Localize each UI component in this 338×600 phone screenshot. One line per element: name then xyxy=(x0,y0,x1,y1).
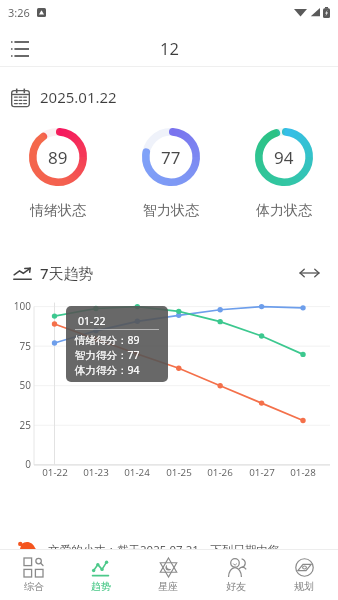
staticText: 情绪得分：89 xyxy=(75,333,140,347)
staticText: 01-24 xyxy=(117,466,157,479)
staticText: 01-27 xyxy=(242,466,282,479)
staticText: 趋势 xyxy=(91,580,111,593)
staticText: 89 xyxy=(48,146,68,169)
staticText: 12 xyxy=(160,37,179,59)
staticText: 体力得分：94 xyxy=(75,363,140,377)
staticText: 75 xyxy=(0,339,31,353)
staticText: 智力状态 xyxy=(143,202,199,220)
staticText: 01-25 xyxy=(159,466,199,479)
staticText: 01-28 xyxy=(283,466,323,479)
staticText: 体力状态 xyxy=(256,202,312,220)
staticText: 情绪状态 xyxy=(30,202,86,220)
staticText: 文爱的小丈：截于2025.07.21，下列日期中您 xyxy=(48,542,280,549)
staticText: 综合 xyxy=(24,580,44,593)
button[interactable]: 89 xyxy=(2,128,114,220)
staticText: 25 xyxy=(0,418,31,432)
staticText: 智力得分：77 xyxy=(75,348,140,362)
button[interactable]: 77 xyxy=(114,128,227,220)
staticText: 77 xyxy=(161,146,181,169)
button[interactable]: 2025.01.22 xyxy=(11,87,117,107)
staticText: 7天趋势 xyxy=(40,263,94,283)
button[interactable]: 趋势 xyxy=(67,550,134,600)
button[interactable]: 文爱的小丈：截于2025.07.21，下列日期中您 xyxy=(0,531,338,549)
staticText: 01-23 xyxy=(76,466,116,479)
button[interactable]: 94 xyxy=(227,128,338,220)
staticText: 100 xyxy=(0,299,31,313)
staticText: 星座 xyxy=(158,580,178,593)
button[interactable]: 规划 xyxy=(270,550,338,600)
staticText: 01-26 xyxy=(200,466,240,479)
staticText: 94 xyxy=(274,146,294,169)
staticText: 50 xyxy=(0,378,31,392)
staticText: 01-22 xyxy=(78,314,106,328)
button[interactable]: 星座 xyxy=(134,550,202,600)
button[interactable]: Menu xyxy=(0,28,40,70)
button[interactable]: 综合 xyxy=(0,550,67,600)
staticText: 规划 xyxy=(294,580,314,593)
button[interactable]: 好友 xyxy=(202,550,270,600)
staticText: 01-22 xyxy=(35,466,75,479)
staticText: 好友 xyxy=(226,580,246,593)
button[interactable]: Swipe horizontally xyxy=(296,260,322,286)
staticText: 3:26 xyxy=(8,5,30,20)
staticText: 2025.01.22 xyxy=(40,87,117,107)
staticText: 0 xyxy=(0,457,31,471)
